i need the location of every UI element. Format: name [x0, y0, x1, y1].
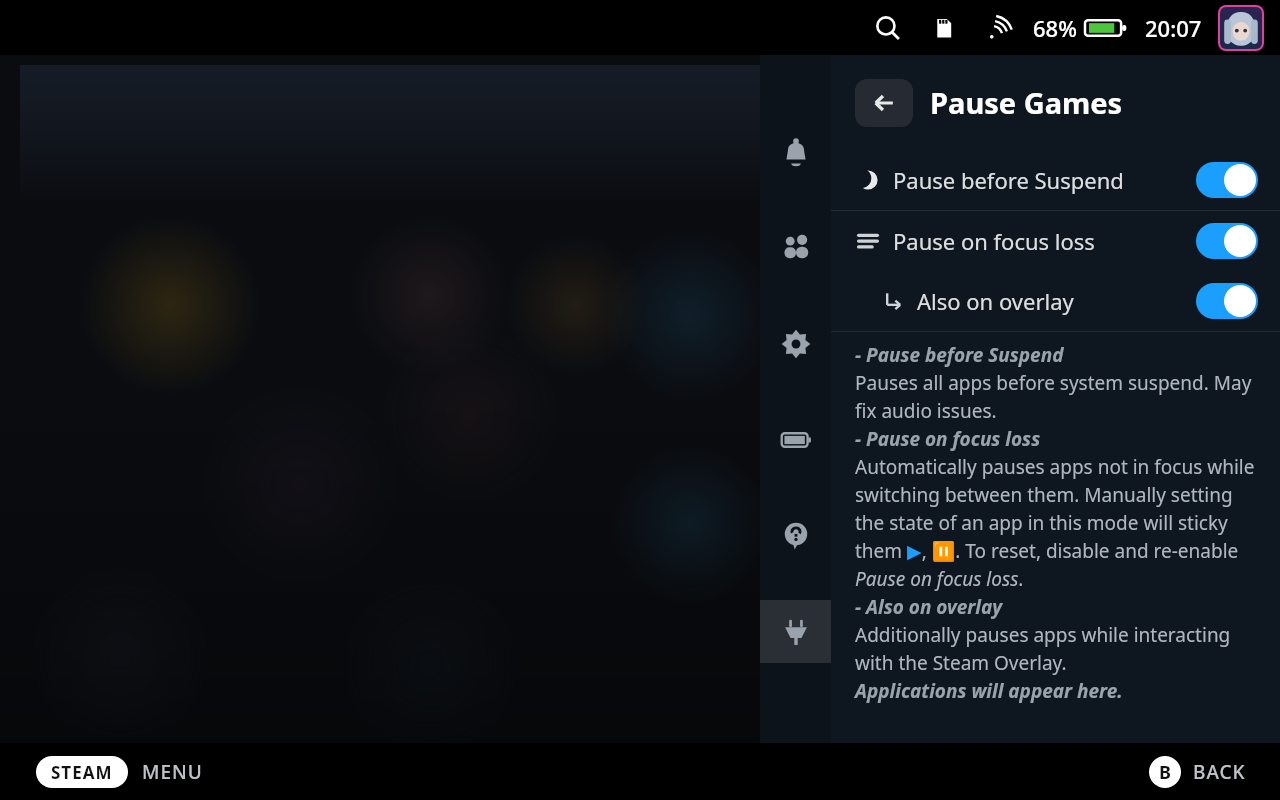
staticText: Pause on focus loss: [893, 226, 1095, 256]
staticText: 20:07: [1145, 13, 1202, 43]
staticText: B: [1159, 760, 1171, 785]
button[interactable]: Plugins: [760, 600, 831, 663]
staticText: Pause Games: [930, 83, 1123, 122]
button[interactable]: Notifications: [760, 120, 831, 183]
button[interactable]: SD card: [921, 5, 967, 51]
button[interactable]: [1196, 162, 1258, 198]
button[interactable]: [1196, 283, 1258, 319]
button[interactable]: Settings: [760, 312, 831, 375]
staticText: Also on overlay: [917, 286, 1074, 316]
staticText: Pause before Suspend: [893, 165, 1124, 195]
button[interactable]: Also on overlay: [831, 271, 1280, 331]
button[interactable]: [1196, 223, 1258, 259]
staticText: - Pause before Suspend Pauses all apps b…: [855, 342, 1260, 704]
button[interactable]: Wi-Fi: [975, 5, 1021, 51]
staticText: STEAM: [51, 761, 113, 784]
button[interactable]: Pause before Suspend: [831, 150, 1280, 210]
button[interactable]: B: [1149, 756, 1246, 788]
button[interactable]: STEAM: [36, 756, 128, 788]
button[interactable]: Search: [865, 5, 911, 51]
button[interactable]: Help: [760, 504, 831, 567]
button[interactable]: Back: [855, 79, 913, 127]
button[interactable]: Pause on focus loss: [831, 211, 1280, 271]
button[interactable]: Profile: [1220, 7, 1262, 49]
staticText: 68%: [1033, 13, 1077, 43]
button[interactable]: Friends: [760, 216, 831, 279]
staticText: BACK: [1193, 759, 1246, 785]
button[interactable]: Battery: [760, 408, 831, 471]
staticText: MENU: [142, 759, 203, 785]
